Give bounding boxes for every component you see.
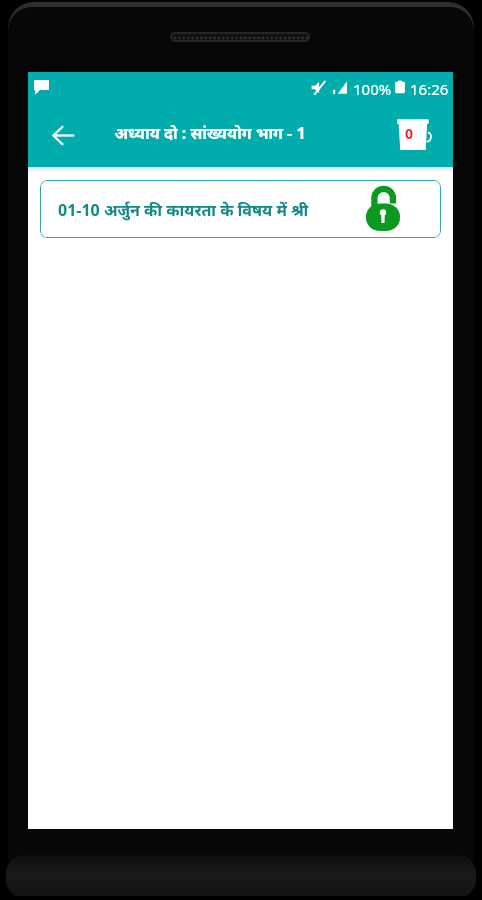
button[interactable]: 01-10 अर्जुन की कायरता के विषय में श्री [40,180,441,238]
staticText: अध्याय दो : सांख्ययोग भाग - 1 [114,122,306,144]
button[interactable]: Cart [386,108,432,154]
button[interactable]: Back [43,115,83,155]
staticText: 100% [353,79,392,99]
staticText: 0 [405,124,414,143]
staticText: 01-10 अर्जुन की कायरता के विषय में श्री [58,199,309,221]
staticText: 16:26 [410,79,449,99]
